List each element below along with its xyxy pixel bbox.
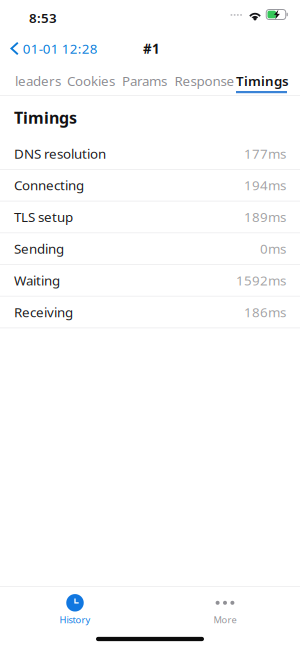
button[interactable]: Timings [0,62,51,95]
button[interactable]: TLS setup [0,201,300,233]
button[interactable]: Cookies [0,62,48,95]
staticText: DNS resolution [14,145,106,162]
staticText: TLS setup [14,208,73,226]
button[interactable]: History [0,594,150,626]
staticText: Response [174,72,234,90]
staticText: 194ms [244,176,286,194]
button[interactable]: #1 [137,33,166,64]
button[interactable]: More [150,594,300,626]
button[interactable]: leaders [0,62,46,95]
staticText: Timings [14,107,77,128]
staticText: Connecting [14,176,84,194]
staticText: Cookies [67,72,115,90]
button[interactable]: 01-01 12:28 [0,32,104,65]
button[interactable]: Connecting [0,170,300,201]
staticText: 186ms [244,303,286,321]
button[interactable]: Waiting [0,265,300,296]
staticText: 189ms [244,208,286,226]
staticText: 1592ms [236,271,286,289]
staticText: History [59,614,90,626]
staticText: leaders [15,72,61,90]
staticText: Params [122,72,167,90]
button[interactable]: Response [0,62,59,95]
staticText: 0ms [260,240,286,257]
staticText: 01-01 12:28 [23,40,98,57]
button[interactable]: Sending [0,233,300,265]
button[interactable]: DNS resolution [0,138,300,170]
staticText: Receiving [14,303,73,321]
staticText: Waiting [14,271,60,289]
staticText: 8:53 [29,9,57,27]
staticText: More [213,614,236,626]
staticText: Sending [14,240,64,257]
button[interactable]: Receiving [0,296,300,328]
button[interactable]: Params [0,62,47,95]
staticText: Timings [236,72,289,90]
staticText: #1 [143,40,160,57]
staticText: 177ms [244,145,286,162]
